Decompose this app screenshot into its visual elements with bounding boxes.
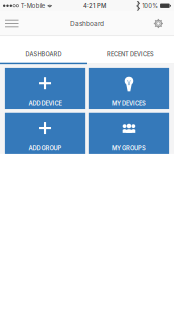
staticText: ADD DEVICE [28,100,61,107]
staticText: T-Mobile [21,2,45,9]
staticText: DASHBOARD [25,51,61,57]
staticText: MY GROUPS [112,145,146,152]
button[interactable]: Menu [0,14,26,33]
staticText: RECENT DEVICES [107,51,154,57]
button[interactable]: MY GROUPS [89,113,169,154]
button[interactable]: ADD GROUP [5,113,85,154]
staticText: 4:21 PM [83,2,106,9]
staticText: 100% [142,2,158,9]
staticText: ADD GROUP [28,145,61,152]
staticText: Dashboard [70,19,104,27]
button[interactable]: Settings [146,13,174,34]
button[interactable]: DASHBOARD [0,36,87,64]
staticText: MY DEVICES [112,100,146,107]
button[interactable]: MY DEVICES [89,68,169,109]
button[interactable]: RECENT DEVICES [87,36,174,64]
button[interactable]: ADD DEVICE [5,68,85,109]
